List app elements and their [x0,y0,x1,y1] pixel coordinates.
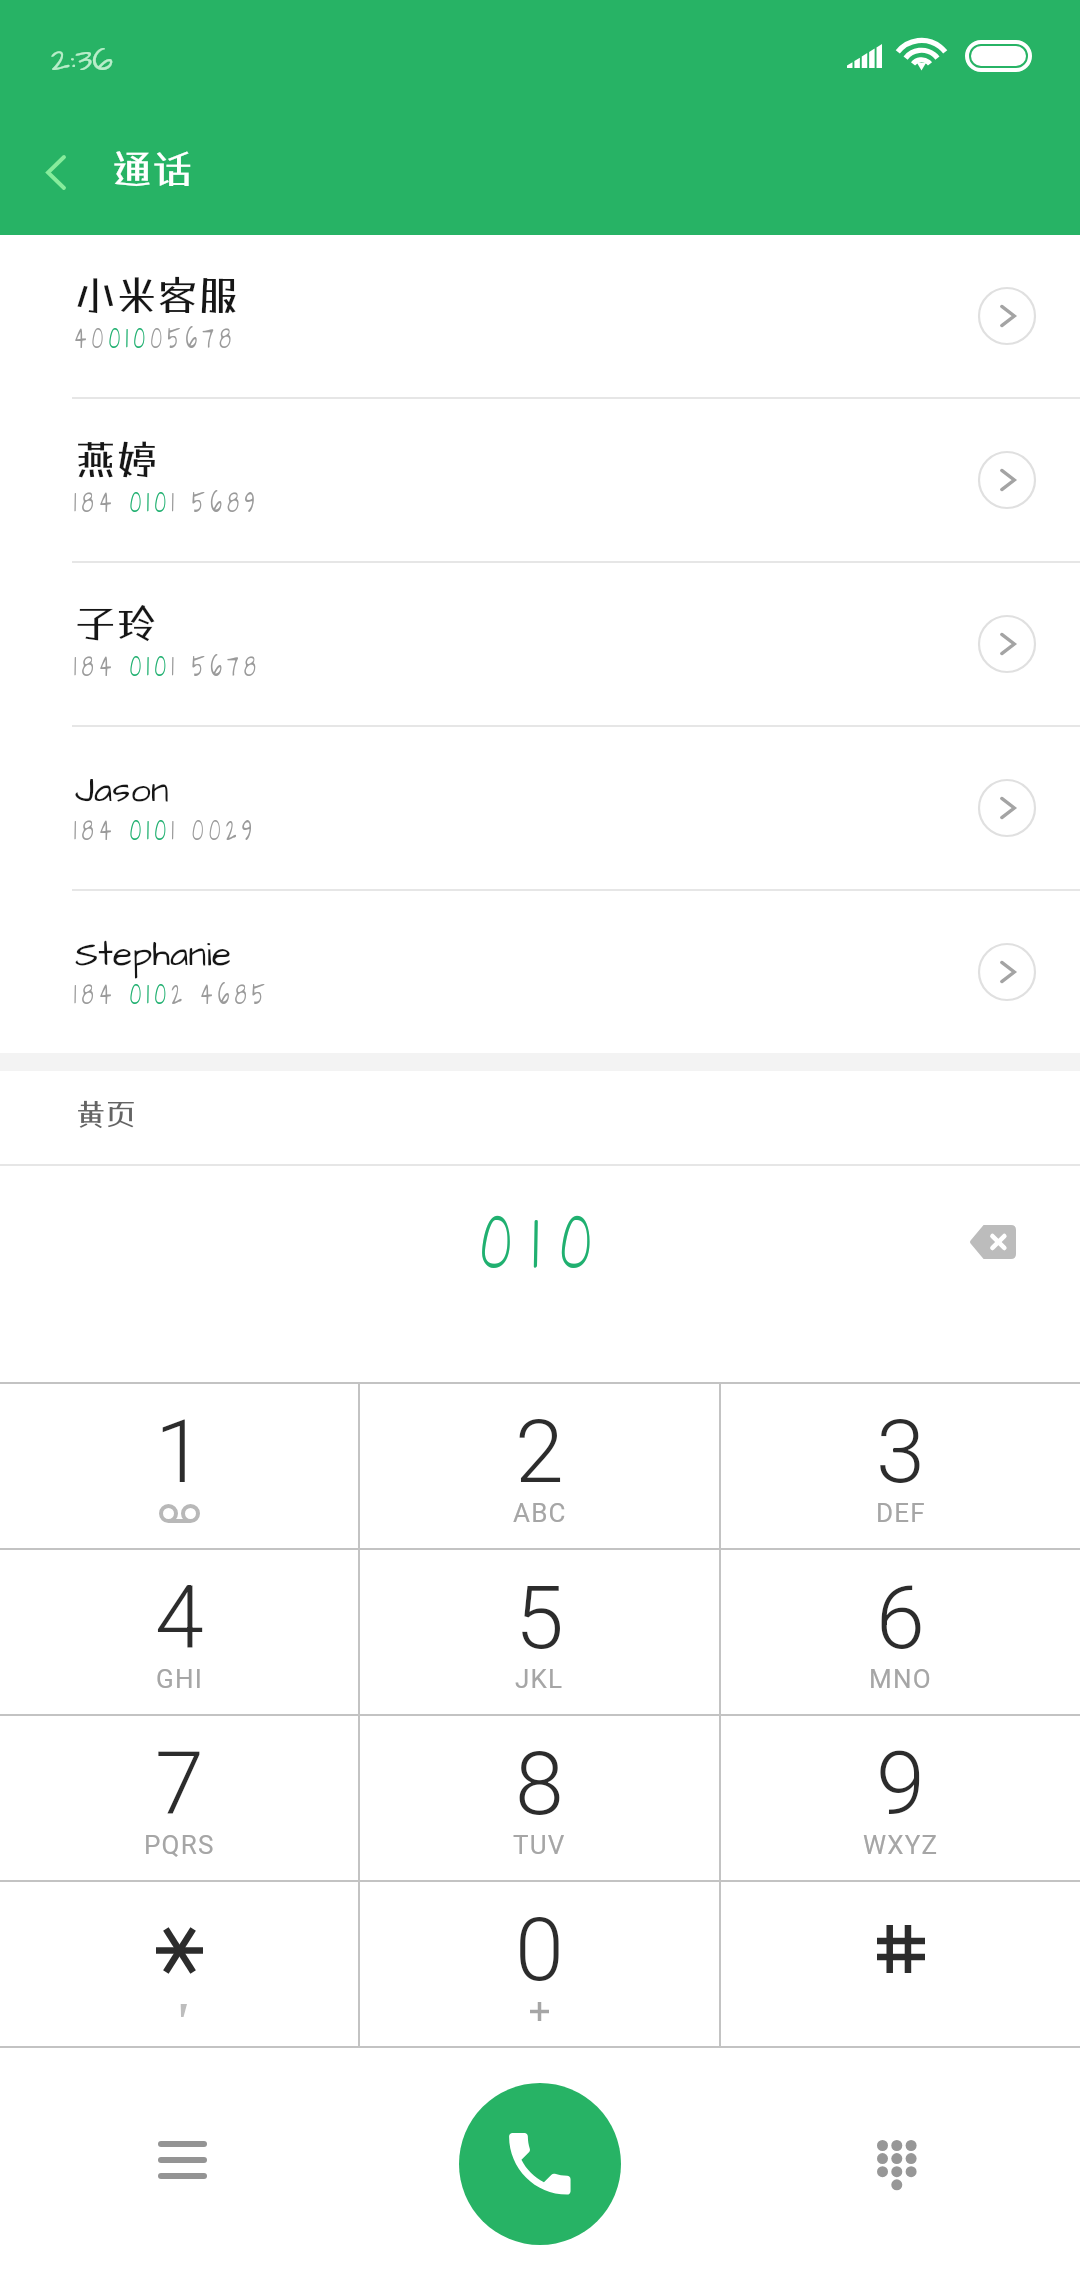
button[interactable]: Call [459,2083,621,2245]
button[interactable]: 1 [0,1384,358,1548]
staticText: 184 0101 0029 [74,806,258,853]
staticText: 1 [155,1400,204,1503]
button[interactable]: Contact details [949,258,1065,374]
button[interactable]: 0 [360,1882,719,2046]
button[interactable]: 8 [360,1716,719,1880]
staticText: 7 [155,1732,204,1835]
button[interactable]: 3 [721,1384,1080,1548]
staticText: 0 [515,1898,564,2001]
staticText: PQRS [144,1830,215,1860]
staticText: TUV [513,1830,566,1860]
button[interactable]: 2 [360,1384,719,1548]
staticText: 5 [515,1566,564,1669]
staticText: 2:36 [51,37,113,83]
staticText: 184 0102 4685 [74,970,271,1017]
button[interactable]: Back [8,124,104,220]
staticText: GHI [156,1664,203,1694]
staticText: 184 0101 5678 [74,642,262,689]
staticText: 4 [155,1566,204,1669]
button[interactable]: 子玲 [0,563,1080,727]
button[interactable]: Jason [0,727,1080,891]
staticText: 010 [480,1181,613,1303]
staticText: 子玲 [75,599,157,647]
button[interactable]: Stephanie [0,891,1080,1053]
staticText: JKL [515,1664,564,1694]
staticText: 小米客服 [75,271,239,319]
button[interactable]: 黄页 [0,1071,1080,1164]
button[interactable]: 5 [360,1550,719,1714]
staticText: 6 [876,1566,925,1669]
staticText: 184 0101 5689 [74,478,261,525]
button[interactable]: Delete [943,1193,1041,1291]
button[interactable]: Dialpad [837,2105,957,2225]
button[interactable]: Call log [122,2100,242,2220]
staticText: 8 [515,1732,564,1835]
button[interactable]: 6 [721,1550,1080,1714]
button[interactable]: 燕婷 [0,399,1080,563]
staticText: 9 [876,1732,925,1835]
button[interactable] [721,1882,1080,2046]
button[interactable]: 7 [0,1716,358,1880]
staticText: 2 [515,1400,564,1503]
staticText: ABC [513,1498,567,1528]
button[interactable]: Contact details [949,750,1065,866]
staticText: 4001005678 [74,314,237,361]
button[interactable]: 4 [0,1550,358,1714]
staticText: 燕婷 [75,435,157,483]
staticText: 通话 [112,145,192,192]
staticText: 3 [876,1400,925,1503]
button[interactable]: 小米客服 [0,235,1080,399]
button[interactable] [0,1882,358,2046]
staticText: MNO [869,1664,932,1694]
button[interactable]: Contact details [949,914,1065,1030]
staticText: Stephanie [75,929,232,979]
staticText: Jason [75,765,169,815]
staticText: DEF [876,1498,926,1528]
button[interactable]: 9 [721,1716,1080,1880]
staticText: WXYZ [863,1830,939,1860]
button[interactable]: Contact details [949,586,1065,702]
button[interactable]: Contact details [949,422,1065,538]
staticText: 黄页 [76,1097,136,1132]
